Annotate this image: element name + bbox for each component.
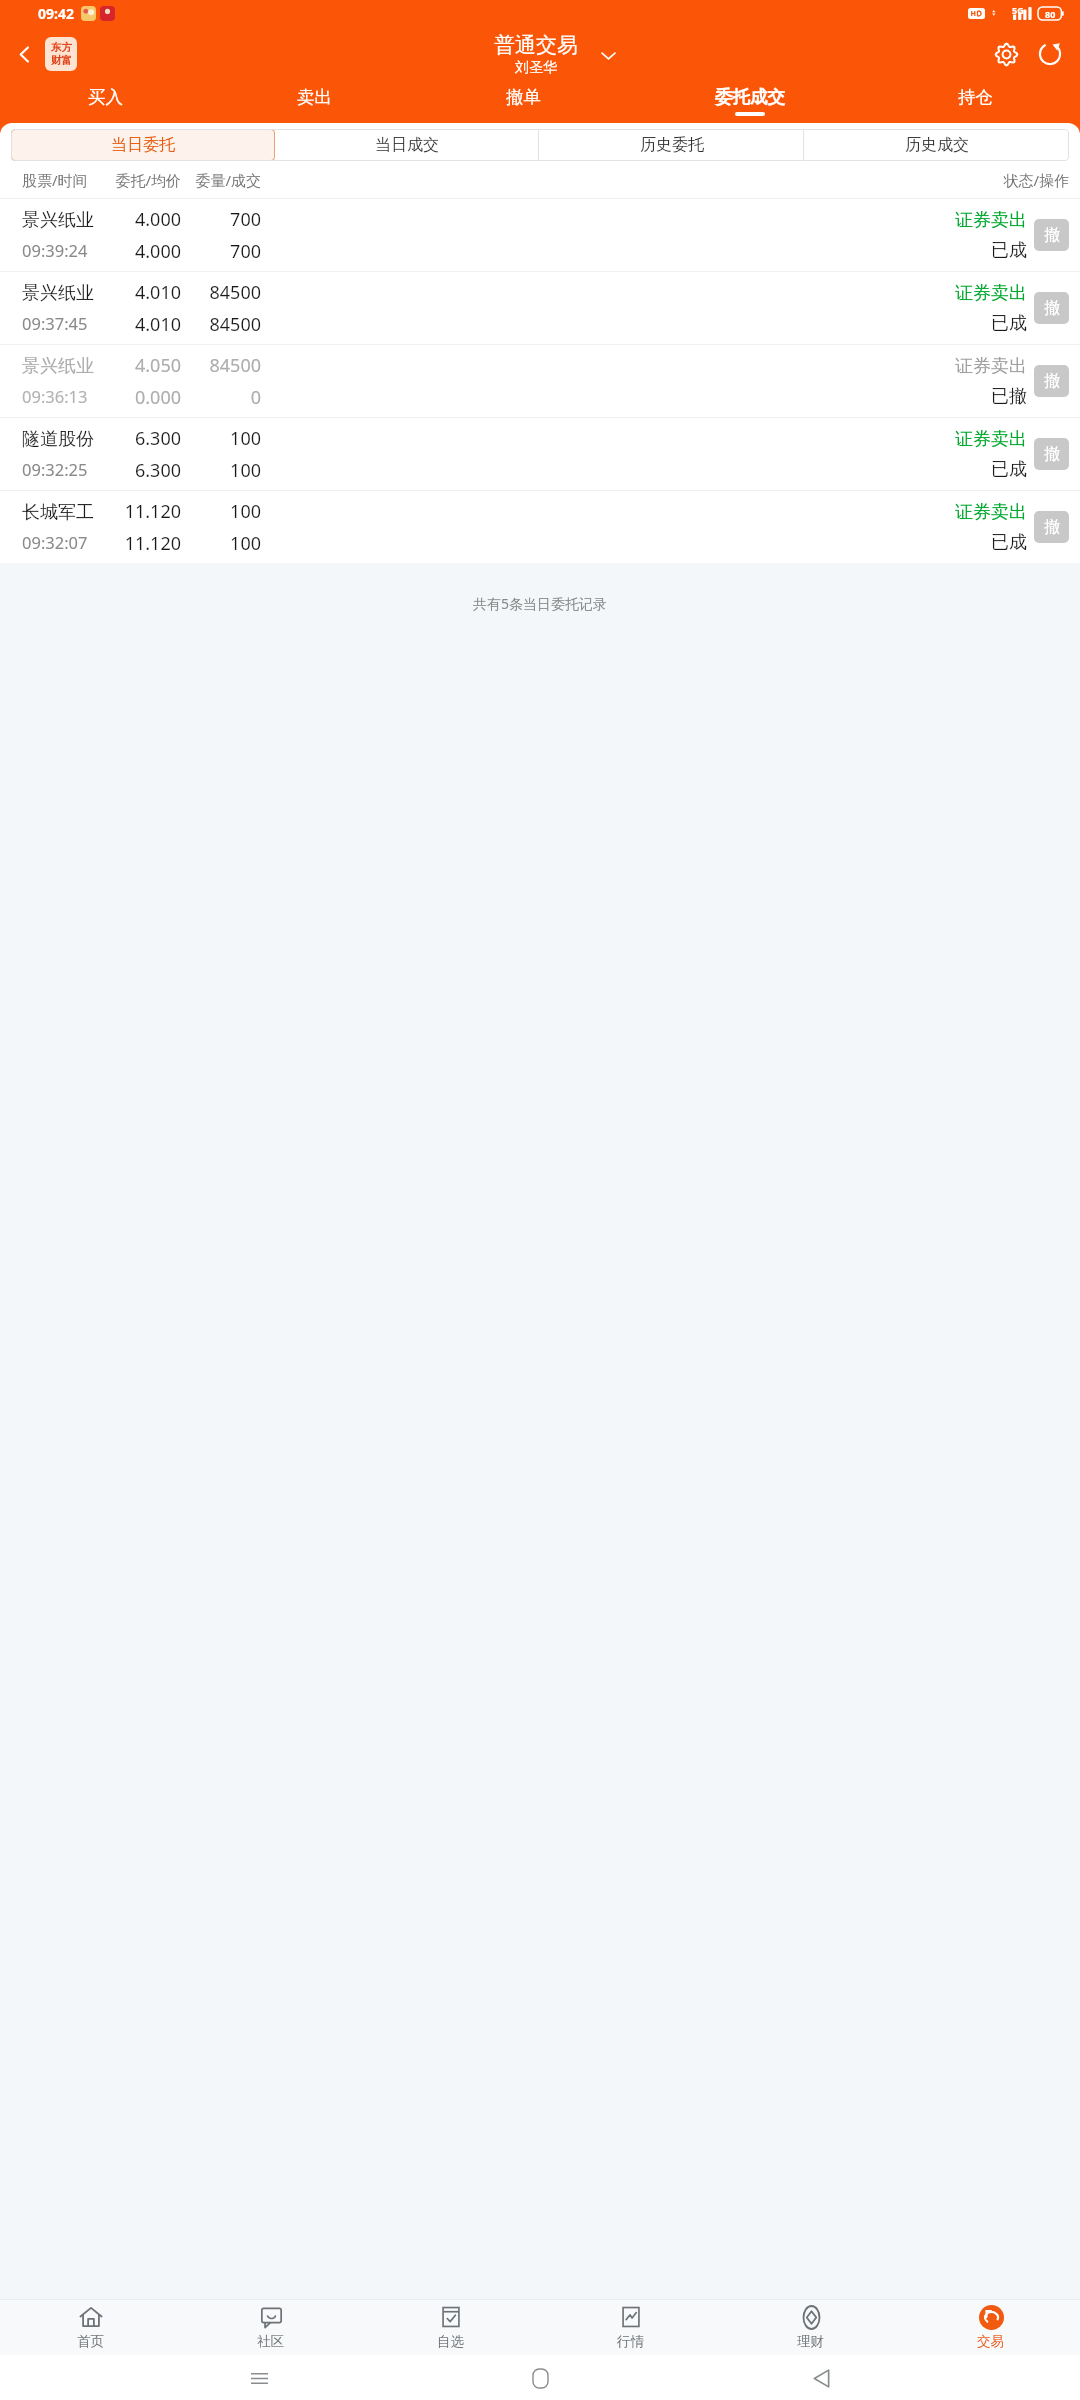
button[interactable]: 普通交易 <box>494 32 578 77</box>
button[interactable]: 社区 <box>180 2299 360 2355</box>
staticText: 买入 <box>88 86 123 108</box>
staticText: 状态/操作 <box>975 170 1069 190</box>
staticText: 共有5条当日委托记录 <box>0 594 1080 613</box>
button[interactable]: 撤 <box>1034 292 1069 324</box>
staticText: 84500 <box>181 280 261 305</box>
button[interactable]: 委托成交 <box>628 82 871 123</box>
staticText: 已成 <box>991 312 1027 335</box>
staticText: 撤 <box>1044 371 1060 391</box>
staticText: 09:39:24 <box>22 239 88 261</box>
button[interactable]: 理财 <box>720 2299 900 2355</box>
staticText: 首页 <box>77 2333 104 2350</box>
button[interactable]: 当日委托 <box>11 129 275 161</box>
button[interactable]: 撤 <box>1034 438 1069 470</box>
staticText: 证券卖出 <box>955 428 1027 451</box>
staticText: 5G <box>1012 4 1024 16</box>
staticText: 景兴纸业 <box>22 355 94 378</box>
staticText: 持仓 <box>958 86 993 108</box>
staticText: 股票/时间 <box>22 170 100 190</box>
staticText: 景兴纸业 <box>22 282 94 305</box>
staticText: 11.120 <box>100 499 181 524</box>
button[interactable]: 撤 <box>1034 219 1069 251</box>
staticText: 84500 <box>181 353 261 378</box>
staticText: 历史委托 <box>640 135 704 155</box>
staticText: 0.000 <box>100 385 181 410</box>
staticText: 11.120 <box>100 531 181 556</box>
staticText: 100 <box>181 499 261 524</box>
staticText: 卖出 <box>297 86 332 108</box>
button[interactable]: 撤单 <box>419 82 628 123</box>
staticText: 84500 <box>181 312 261 337</box>
button[interactable]: Back <box>799 2356 843 2400</box>
staticText: 撤 <box>1044 225 1060 245</box>
staticText: 4.010 <box>100 312 181 337</box>
staticText: 已撤 <box>991 385 1027 408</box>
staticText: 700 <box>181 207 261 232</box>
staticText: 09:37:45 <box>22 312 88 334</box>
staticText: 4.000 <box>100 239 181 264</box>
staticText: 景兴纸业 <box>22 209 94 232</box>
button[interactable]: 卖出 <box>210 82 419 123</box>
staticText: 东方 <box>51 41 72 54</box>
staticText: 理财 <box>797 2333 824 2350</box>
staticText: 交易 <box>977 2333 1004 2350</box>
button[interactable]: 景兴纸业 <box>0 199 1080 271</box>
staticText: 100 <box>181 458 261 483</box>
staticText: 80 <box>1045 8 1056 20</box>
staticText: 社区 <box>257 2333 284 2350</box>
staticText: 撤 <box>1044 444 1060 464</box>
staticText: 4.010 <box>100 280 181 305</box>
button[interactable]: 行情 <box>540 2299 720 2355</box>
staticText: 撤单 <box>506 86 541 108</box>
staticText: 09:32:07 <box>22 531 88 553</box>
staticText: 行情 <box>617 2333 644 2350</box>
button[interactable]: 隧道股份 <box>0 418 1080 490</box>
staticText: 当日成交 <box>375 135 439 155</box>
staticText: 已成 <box>991 239 1027 262</box>
staticText: 0 <box>181 385 261 410</box>
button[interactable]: 买入 <box>0 82 210 123</box>
staticText: 已成 <box>991 458 1027 481</box>
button[interactable]: 景兴纸业 <box>0 272 1080 344</box>
staticText: 撤 <box>1044 517 1060 537</box>
button[interactable]: 撤 <box>1034 365 1069 397</box>
staticText: 6.300 <box>100 458 181 483</box>
button[interactable]: 首页 <box>0 2299 180 2355</box>
staticText: 证券卖出 <box>955 355 1027 378</box>
staticText: 隧道股份 <box>22 428 94 451</box>
staticText: 09:36:13 <box>22 385 88 407</box>
button[interactable]: 撤 <box>1034 511 1069 543</box>
staticText: 委托/均价 <box>100 170 181 190</box>
button[interactable]: Settings <box>984 32 1028 76</box>
button[interactable]: 交易 <box>900 2299 1080 2355</box>
staticText: 长城军工 <box>22 501 94 524</box>
button[interactable]: 当日成交 <box>275 129 539 161</box>
staticText: 700 <box>181 239 261 264</box>
button[interactable]: 东方 <box>45 37 77 71</box>
button[interactable]: 历史成交 <box>804 129 1069 161</box>
button[interactable]: Refresh <box>1028 32 1072 76</box>
staticText: 普通交易 <box>494 32 578 58</box>
staticText: 4.050 <box>100 353 181 378</box>
button[interactable]: Recent apps <box>237 2356 281 2400</box>
button[interactable]: 持仓 <box>871 82 1080 123</box>
staticText: 委托成交 <box>715 86 785 108</box>
staticText: 100 <box>181 531 261 556</box>
button[interactable]: 景兴纸业 <box>0 345 1080 417</box>
staticText: 6.300 <box>100 426 181 451</box>
staticText: 刘圣华 <box>515 59 557 77</box>
button[interactable]: 历史委托 <box>539 129 804 161</box>
button[interactable]: 长城军工 <box>0 491 1080 563</box>
staticText: 撤 <box>1044 298 1060 318</box>
staticText: 证券卖出 <box>955 282 1027 305</box>
button[interactable]: Switch account <box>594 41 622 69</box>
button[interactable]: Home <box>518 2356 562 2400</box>
button[interactable]: Back <box>4 34 44 74</box>
staticText: 4.000 <box>100 207 181 232</box>
button[interactable]: 自选 <box>360 2299 540 2355</box>
staticText: 09:42 <box>38 4 74 23</box>
staticText: 证券卖出 <box>955 209 1027 232</box>
staticText: 证券卖出 <box>955 501 1027 524</box>
staticText: 历史成交 <box>905 135 969 155</box>
staticText: 已成 <box>991 531 1027 554</box>
